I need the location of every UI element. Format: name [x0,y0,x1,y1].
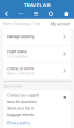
button[interactable]: Manage booking [3,29,71,45]
staticText: Quick links [4,85,22,88]
button[interactable]: Menu [34,12,38,16]
staticText: team for questions [7,100,37,104]
button[interactable]: Flight status [3,46,71,62]
button[interactable]: Back [5,11,8,16]
staticText: TRAVELAIR [23,2,50,9]
button[interactable]: Open [64,96,66,98]
staticText: Contact our support [7,93,39,97]
staticText: Live updates [7,55,28,58]
button[interactable]: Check-in online [3,63,71,79]
button[interactable]: My account [51,22,70,26]
staticText: Check-in online [7,66,34,71]
staticText: Privacy policy [7,121,30,125]
button[interactable]: Search [49,12,53,15]
staticText: baggage refunds. [7,113,35,117]
staticText: Home / Bookings / Trips [3,22,41,26]
staticText: Opens 24h before [7,72,35,75]
button[interactable]: Privacy policy [7,119,30,125]
button[interactable]: Home [64,11,69,16]
staticText: Flight status [7,49,27,54]
staticText: about your trip or [7,106,34,110]
button[interactable]: More [19,13,23,14]
staticText: Manage booking [7,34,34,39]
staticText: My account [51,22,70,26]
